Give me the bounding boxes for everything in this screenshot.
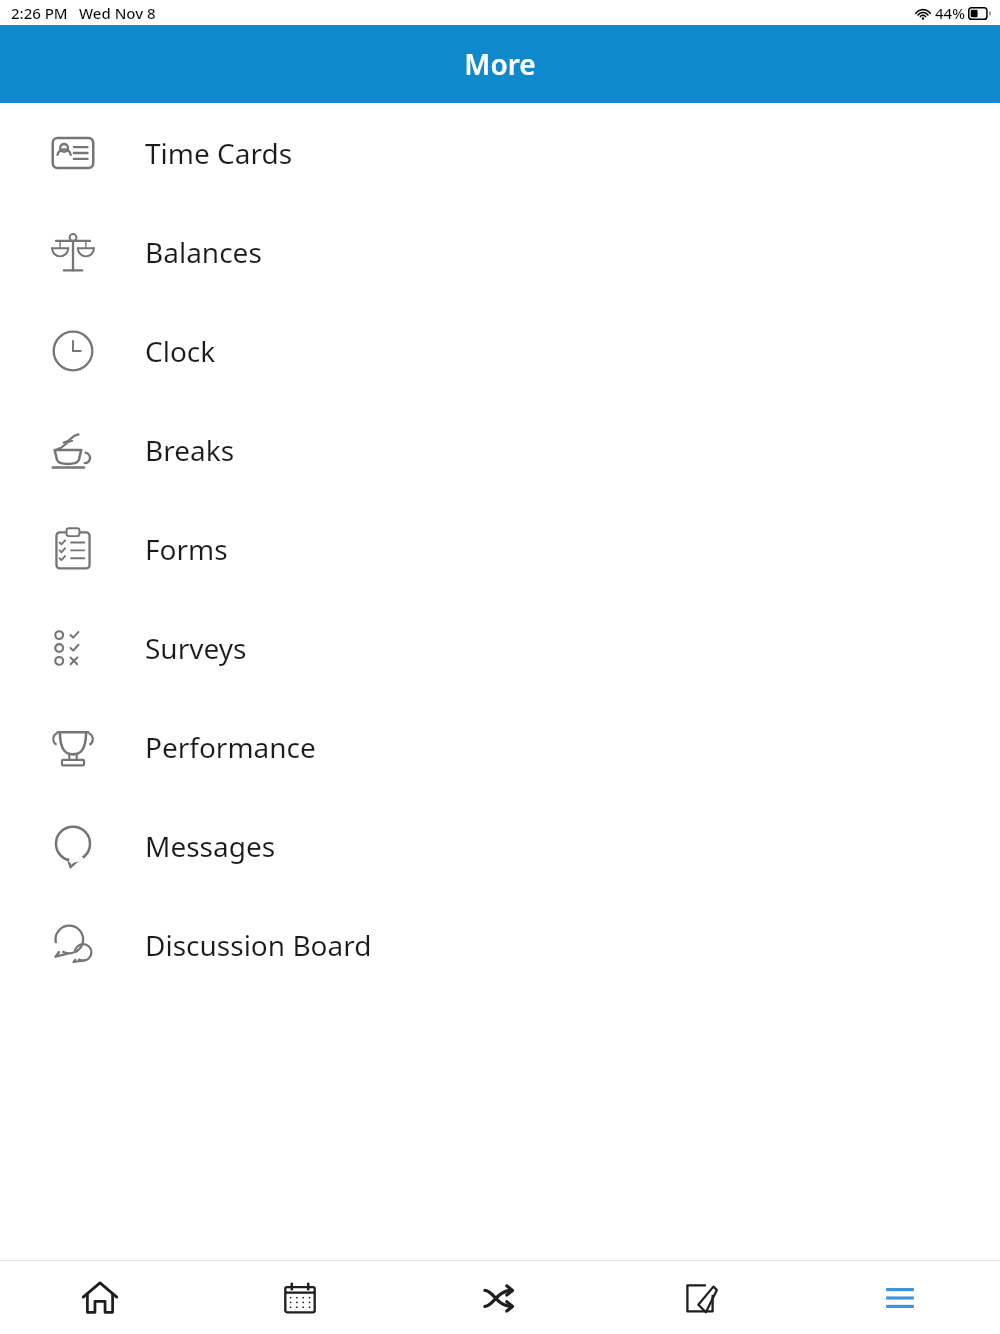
button[interactable]: Performance [0, 697, 1000, 796]
button[interactable]: Balances [0, 202, 1000, 301]
button[interactable]: Discussion Board [0, 895, 1000, 994]
staticText: Performance [145, 728, 316, 766]
button[interactable]: Home [0, 1261, 200, 1334]
staticText: 44% [935, 3, 965, 23]
button[interactable]: Calendar [200, 1261, 400, 1334]
staticText: Wed Nov 8 [79, 3, 156, 23]
staticText: Clock [145, 332, 216, 370]
staticText: Forms [145, 530, 228, 568]
button[interactable]: Requests [600, 1261, 800, 1334]
button[interactable]: Surveys [0, 598, 1000, 697]
staticText: Balances [145, 233, 262, 271]
button[interactable]: Clock [0, 301, 1000, 400]
button[interactable]: Forms [0, 499, 1000, 598]
button[interactable]: Breaks [0, 400, 1000, 499]
button[interactable]: More [800, 1261, 1000, 1334]
staticText: Discussion Board [145, 926, 372, 964]
button[interactable]: Time Cards [0, 103, 1000, 202]
button[interactable]: Swap Shifts [400, 1261, 600, 1334]
staticText: Messages [145, 827, 276, 865]
staticText: More [464, 45, 536, 83]
staticText: Surveys [145, 629, 247, 667]
button[interactable]: Messages [0, 796, 1000, 895]
staticText: 2:26 PM [11, 3, 68, 23]
staticText: Time Cards [145, 134, 293, 172]
staticText: Breaks [145, 431, 235, 469]
